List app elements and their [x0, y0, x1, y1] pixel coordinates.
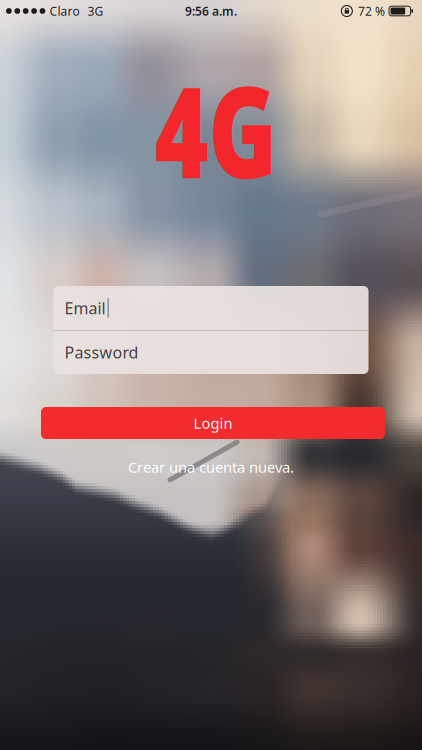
staticText: Login — [193, 413, 232, 433]
button[interactable]: Email — [53, 286, 368, 330]
staticText: Email — [64, 297, 105, 319]
staticText: 3G — [87, 3, 103, 19]
staticText: Crear una cuenta nueva. — [128, 457, 294, 477]
staticText: Password — [64, 342, 138, 363]
staticText: 9:56 a.m. — [185, 3, 237, 19]
button[interactable]: Password — [53, 331, 368, 374]
staticText: 4G — [132, 45, 300, 213]
staticText: 72 % — [358, 3, 385, 19]
button[interactable]: Crear una cuenta nueva. — [128, 457, 294, 477]
staticText: Claro — [49, 3, 79, 19]
button[interactable]: Login — [41, 407, 385, 439]
